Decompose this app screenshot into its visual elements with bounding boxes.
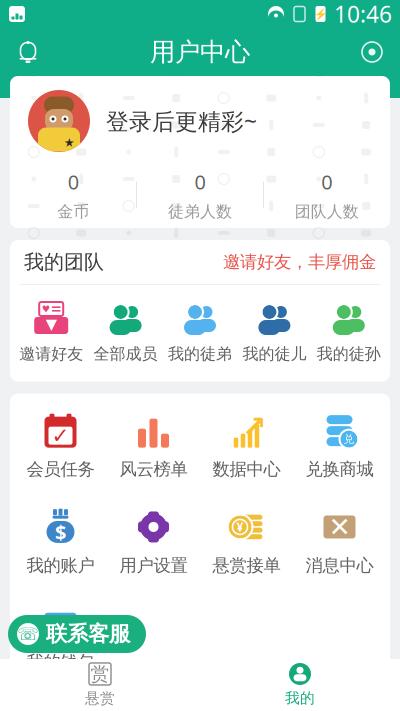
staticText: 我的钱包 xyxy=(26,651,94,672)
staticText: 邀请好友，丰厚佣金 xyxy=(223,251,376,273)
staticText: ☏ xyxy=(17,624,39,644)
staticText: ♥ xyxy=(42,304,50,314)
staticText: ✓ xyxy=(51,423,69,448)
staticText: ★ xyxy=(64,136,75,149)
button[interactable]: 兑 xyxy=(293,410,386,484)
staticText: ¥ xyxy=(236,519,243,535)
staticText: 邀请好友 xyxy=(19,344,83,364)
staticText: 全部成员 xyxy=(94,344,158,364)
button[interactable]: 我的徒弟 xyxy=(163,297,237,368)
button[interactable]: 我的徒孙 xyxy=(312,297,386,368)
button[interactable]: 设置 xyxy=(350,30,394,74)
staticText: 用户设置 xyxy=(119,555,187,576)
staticText: 我的 xyxy=(285,689,315,707)
staticText: 风云榜单 xyxy=(119,459,187,480)
staticText: $ xyxy=(55,519,66,545)
button[interactable]: 0 xyxy=(10,168,137,222)
button[interactable]: 0 xyxy=(137,168,263,222)
button[interactable]: ↗ xyxy=(200,410,293,484)
staticText: 兑换商城 xyxy=(305,459,373,480)
staticText: 0 xyxy=(68,168,79,195)
button[interactable]: ♥ xyxy=(14,297,88,368)
button[interactable]: ☏ xyxy=(8,615,146,653)
staticText: 消息中心 xyxy=(305,555,373,576)
staticText: 我的团队 xyxy=(24,250,104,274)
staticText: 兑 xyxy=(343,433,354,446)
button[interactable]: ✓ xyxy=(14,410,107,484)
button[interactable]: 0 xyxy=(263,168,390,222)
staticText: 赏 xyxy=(90,662,109,685)
staticText: 我的徒弟 xyxy=(168,344,232,364)
staticText: 我的徒儿 xyxy=(242,344,306,364)
staticText: 悬赏 xyxy=(85,689,115,707)
staticText: 我的账户 xyxy=(26,555,94,576)
button[interactable]: 我的徒儿 xyxy=(237,297,312,368)
button[interactable]: 我的钱包 xyxy=(14,602,107,676)
staticText: 会员任务 xyxy=(26,459,94,480)
staticText: 10:46 xyxy=(334,0,392,29)
staticText: ▾ xyxy=(46,311,57,336)
staticText: ↗ xyxy=(242,410,267,443)
button[interactable]: $ xyxy=(14,506,107,580)
button[interactable]: ¥ xyxy=(200,506,293,580)
staticText: ✕ xyxy=(328,512,350,542)
staticText: 我的徒孙 xyxy=(317,344,381,364)
staticText: ⚡ xyxy=(314,8,327,20)
staticText: 悬赏接单 xyxy=(212,555,280,576)
button[interactable]: 用户设置 xyxy=(107,506,200,580)
staticText: 登录后更精彩~ xyxy=(106,106,257,136)
button[interactable]: 我的 xyxy=(200,657,400,711)
staticText: 0 xyxy=(194,168,205,195)
staticText: 联系客服 xyxy=(46,621,130,647)
staticText: 用户中心 xyxy=(150,36,250,67)
staticText: 团队人数 xyxy=(295,202,359,222)
button[interactable]: 通知 xyxy=(6,30,50,74)
button[interactable]: ✕ xyxy=(293,506,386,580)
button[interactable]: ★ xyxy=(10,75,390,167)
button[interactable]: 赏 xyxy=(0,656,200,711)
staticText: 数据中心 xyxy=(212,459,280,480)
button[interactable]: 全部成员 xyxy=(88,297,163,368)
staticText: 金币 xyxy=(57,202,89,222)
button[interactable]: 风云榜单 xyxy=(107,410,200,484)
staticText: 徒弟人数 xyxy=(168,202,232,222)
button[interactable]: 我的团队 xyxy=(10,240,390,284)
staticText: 0 xyxy=(321,168,332,195)
